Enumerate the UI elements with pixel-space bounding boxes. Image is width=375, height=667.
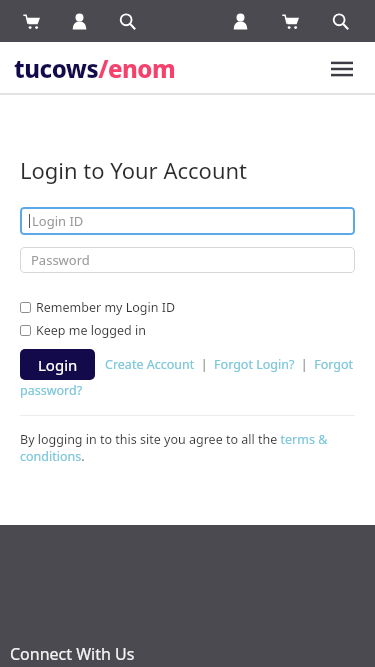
button[interactable]: Account — [66, 8, 92, 34]
staticText: password? — [20, 382, 83, 399]
staticText: tucows/enom — [14, 52, 176, 85]
button[interactable]: Tucows Enom home — [14, 52, 176, 85]
staticText: Remember my Login ID — [36, 299, 176, 316]
button[interactable]: Create Account | Forgot Login? | Forgot — [105, 356, 354, 373]
button[interactable]: Search site — [327, 8, 353, 34]
button[interactable]: Search — [114, 8, 140, 34]
button[interactable]: Remember my Login ID — [20, 299, 176, 316]
button[interactable]: Login ID — [20, 207, 355, 235]
staticText: Create Account | Forgot Login? | Forgot — [105, 356, 354, 373]
staticText: Password — [31, 251, 90, 269]
button[interactable]: By logging in to this site you agree to … — [20, 431, 355, 465]
staticText: Keep me logged in — [36, 322, 146, 339]
button[interactable]: Menu — [327, 54, 357, 84]
button[interactable]: Password — [20, 247, 355, 273]
staticText: Login to Your Account — [20, 155, 248, 185]
button[interactable]: Keep me logged in — [20, 322, 146, 339]
button[interactable]: My account — [227, 8, 253, 34]
staticText: Login ID — [32, 212, 84, 230]
button[interactable]: Shopping cart — [277, 8, 303, 34]
button[interactable]: Cart — [18, 8, 44, 34]
staticText: Login — [38, 355, 78, 375]
staticText: Connect With Us — [10, 643, 135, 665]
button[interactable]: password? — [20, 382, 83, 399]
button[interactable]: Login — [20, 349, 95, 380]
